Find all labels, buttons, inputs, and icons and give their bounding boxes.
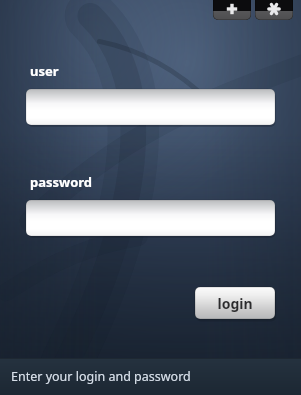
button[interactable] [26, 200, 275, 236]
staticText: login [217, 294, 253, 313]
button[interactable] [26, 89, 275, 125]
button[interactable]: Add [213, 0, 251, 20]
button[interactable]: login [195, 287, 275, 319]
staticText: Enter your login and password [11, 368, 191, 385]
staticText: password [30, 173, 93, 191]
staticText: user [30, 62, 59, 80]
button[interactable]: Options [255, 0, 293, 20]
